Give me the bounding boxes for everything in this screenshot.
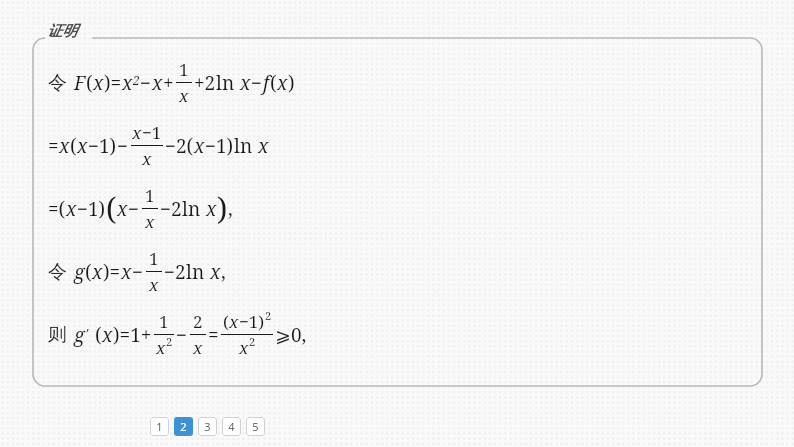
staticText: ( (95, 322, 102, 348)
staticText: x (142, 147, 152, 170)
staticText: +2 (194, 70, 216, 96)
staticText: 2 (166, 334, 173, 349)
staticText: − (132, 259, 144, 285)
button[interactable]: 证明 (47, 22, 77, 41)
staticText: f (263, 70, 270, 96)
staticText: 2 (180, 419, 187, 434)
staticText: x (59, 133, 70, 159)
staticText: −2( (165, 133, 194, 159)
staticText: x (210, 259, 221, 285)
staticText: −2 (164, 259, 186, 285)
staticText: − (251, 70, 263, 96)
button[interactable]: 5 (246, 417, 265, 436)
staticText: x (229, 310, 239, 333)
staticText: x (66, 196, 77, 222)
staticText: 1 (179, 58, 189, 81)
staticText: = (208, 322, 219, 348)
staticText: −1) (205, 133, 234, 159)
button[interactable]: 3 (198, 417, 217, 436)
staticText: ′ (85, 324, 89, 343)
staticText: = (48, 133, 59, 159)
staticText: x (277, 70, 288, 96)
staticText: 2 (133, 72, 140, 88)
staticText: g (74, 322, 85, 348)
staticText: − (176, 322, 188, 348)
staticText: x (193, 336, 203, 359)
staticText: =( (48, 196, 66, 222)
staticText: + (163, 70, 174, 96)
staticText: 2 (265, 308, 272, 323)
staticText: ( (70, 133, 77, 159)
staticText: )= (103, 259, 121, 285)
staticText: x (258, 133, 269, 159)
staticText: ln (182, 196, 206, 222)
staticText: x (122, 70, 133, 96)
staticText: ( (85, 259, 92, 285)
staticText: ( (86, 70, 93, 96)
staticText: ) (217, 188, 228, 229)
staticText: g (74, 259, 85, 285)
staticText: x (92, 259, 103, 285)
staticText: F (74, 70, 86, 96)
staticText: ) (288, 70, 295, 96)
staticText: −1) (239, 310, 265, 333)
staticText: x (102, 322, 113, 348)
staticText: 则 (48, 323, 67, 347)
staticText: ( (223, 310, 229, 333)
staticText: x (179, 84, 189, 107)
staticText: x (194, 133, 205, 159)
staticText: x (77, 133, 88, 159)
staticText: x (152, 70, 163, 96)
staticText: x (132, 121, 142, 144)
staticText: −2 (160, 196, 182, 222)
staticText: x (240, 70, 251, 96)
staticText: ( (106, 188, 117, 229)
staticText: 证明 (47, 22, 77, 41)
staticText: 4 (228, 419, 235, 434)
staticText: 1 (156, 419, 163, 434)
button[interactable]: 4 (222, 417, 241, 436)
staticText: 2 (193, 310, 203, 333)
staticText: − (117, 133, 129, 159)
staticText: , (221, 259, 226, 285)
staticText: −1) (77, 196, 106, 222)
staticText: 1 (145, 184, 155, 207)
staticText: x (156, 336, 166, 359)
staticText: ln (186, 259, 210, 285)
staticText: x (239, 336, 249, 359)
staticText: x (145, 210, 155, 233)
staticText: 1 (149, 247, 159, 270)
staticText: ( (270, 70, 277, 96)
staticText: 1 (159, 310, 169, 333)
staticText: x (206, 196, 217, 222)
staticText: ⩾0, (275, 322, 307, 348)
button[interactable]: 2 (174, 417, 193, 436)
staticText: − (128, 196, 140, 222)
staticText: 令 (48, 260, 67, 284)
staticText: −1 (142, 121, 162, 144)
staticText: x (93, 70, 104, 96)
staticText: 5 (252, 419, 259, 434)
staticText: )=1+ (113, 322, 152, 348)
staticText: )= (104, 70, 122, 96)
staticText: x (121, 259, 132, 285)
staticText: 2 (249, 334, 256, 349)
staticText: 3 (204, 419, 211, 434)
staticText: 令 (48, 71, 67, 95)
button[interactable]: 1 (150, 417, 169, 436)
staticText: , (228, 196, 233, 222)
staticText: x (117, 196, 128, 222)
staticText: ln (216, 70, 240, 96)
staticText: x (149, 273, 159, 296)
staticText: −1) (88, 133, 117, 159)
staticText: − (140, 70, 152, 96)
staticText: ln (234, 133, 258, 159)
